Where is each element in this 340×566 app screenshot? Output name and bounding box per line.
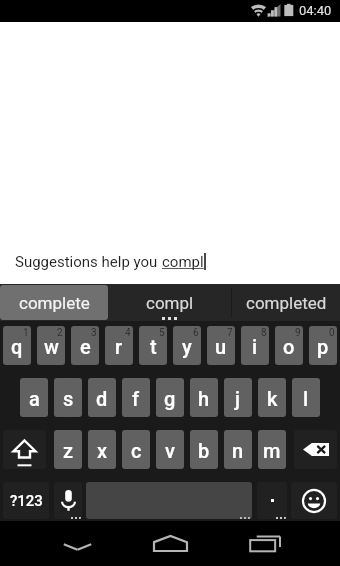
staticText: 7	[227, 327, 233, 339]
button[interactable]: z	[54, 430, 82, 469]
button[interactable]: completed	[232, 284, 340, 321]
button[interactable]: v	[156, 430, 184, 469]
staticText: h	[198, 387, 210, 410]
staticText: complete	[19, 293, 90, 313]
staticText: d	[96, 387, 108, 410]
staticText: 0	[329, 327, 335, 339]
staticText: 04:40	[299, 3, 332, 18]
button[interactable]: k	[258, 378, 286, 417]
button[interactable]: p	[309, 326, 337, 365]
staticText: 2	[57, 327, 63, 339]
button[interactable]: x	[88, 430, 116, 469]
button[interactable]: Emoji	[291, 482, 337, 519]
button[interactable]: Recent apps	[235, 521, 295, 566]
staticText: 1	[23, 327, 29, 339]
button[interactable]: Home	[140, 521, 200, 566]
staticText: r	[115, 335, 123, 358]
staticText: z	[63, 439, 74, 462]
staticText: n	[232, 439, 244, 462]
button[interactable]: q	[3, 326, 31, 365]
staticText: b	[198, 439, 210, 462]
staticText: t	[150, 335, 157, 358]
staticText: q	[11, 335, 23, 358]
button[interactable]: Hide keyboard	[47, 521, 107, 566]
button[interactable]: compl	[112, 284, 227, 321]
button[interactable]: d	[88, 378, 116, 417]
staticText: c	[131, 439, 142, 462]
button[interactable]: m	[258, 430, 286, 469]
staticText: u	[215, 335, 227, 358]
button[interactable]: Shift	[3, 430, 46, 469]
staticText: s	[63, 387, 74, 410]
staticText: k	[267, 387, 278, 410]
button[interactable]: s	[54, 378, 82, 417]
button[interactable]: a	[20, 378, 48, 417]
staticText: 4	[125, 327, 131, 339]
staticText: j	[235, 387, 241, 410]
staticText: 3	[91, 327, 97, 339]
button[interactable]: e	[71, 326, 99, 365]
button[interactable]: g	[156, 378, 184, 417]
button[interactable]: n	[224, 430, 252, 469]
button[interactable]: c	[122, 430, 150, 469]
staticText: a	[29, 387, 40, 410]
staticText: y	[182, 335, 192, 358]
staticText: 5	[159, 327, 165, 339]
button[interactable]: j	[224, 378, 252, 417]
staticText: v	[165, 439, 175, 462]
staticText: 6	[193, 327, 199, 339]
staticText: g	[164, 387, 176, 410]
staticText: e	[80, 335, 91, 358]
staticText: f	[132, 387, 140, 410]
staticText: m	[263, 439, 281, 462]
button[interactable]: l	[292, 378, 320, 417]
button[interactable]: i	[241, 326, 269, 365]
staticText: completed	[246, 293, 327, 313]
staticText: x	[97, 439, 108, 462]
staticText: i	[252, 335, 258, 358]
staticText: Suggestions help you	[15, 253, 162, 271]
button[interactable]: f	[122, 378, 150, 417]
staticText: compl	[146, 293, 194, 313]
button[interactable]: b	[190, 430, 218, 469]
button[interactable]: complete	[0, 285, 108, 320]
staticText: ?123	[10, 492, 43, 510]
button[interactable]: y	[173, 326, 201, 365]
button[interactable]: u	[207, 326, 235, 365]
button[interactable]	[257, 482, 287, 519]
button[interactable]: o	[275, 326, 303, 365]
button[interactable]: t	[139, 326, 167, 365]
staticText: p	[317, 335, 329, 358]
staticText: compl	[162, 253, 204, 271]
button[interactable]: w	[37, 326, 65, 365]
button[interactable]: r	[105, 326, 133, 365]
staticText: 8	[261, 327, 267, 339]
button[interactable]: h	[190, 378, 218, 417]
button[interactable]: ?123	[3, 482, 49, 519]
staticText: w	[44, 335, 59, 358]
staticText: o	[283, 335, 295, 358]
staticText: 9	[295, 327, 301, 339]
staticText: l	[303, 387, 309, 410]
button[interactable]: Backspace	[294, 430, 337, 469]
button[interactable]: Voice input	[54, 482, 82, 519]
button[interactable]: Space	[86, 482, 252, 519]
